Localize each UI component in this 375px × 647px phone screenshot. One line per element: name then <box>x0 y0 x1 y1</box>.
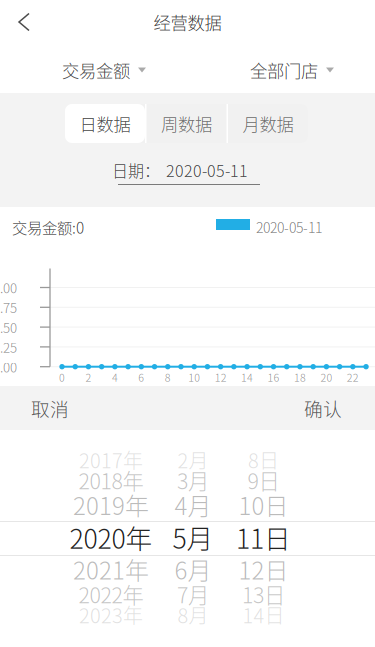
staticText: 确认 <box>304 394 342 421</box>
staticText: 月数据 <box>242 111 293 136</box>
staticText: 2月 <box>177 445 208 474</box>
staticText: 2017年 <box>79 445 143 474</box>
staticText: 全部门店 <box>250 57 318 83</box>
staticText: 13日 <box>242 579 285 609</box>
button[interactable]: 全部门店 <box>250 50 334 90</box>
staticText: 6月 <box>174 552 211 586</box>
staticText: 经营数据 <box>153 9 221 35</box>
staticText: 14日 <box>242 600 284 629</box>
staticText: 日数据 <box>79 111 130 136</box>
staticText: 7月 <box>177 579 209 609</box>
staticText: 14 <box>241 369 253 385</box>
staticText: 0 <box>59 369 65 385</box>
staticText: 交易金额:0 <box>12 216 84 238</box>
staticText: 0.00 <box>0 357 17 376</box>
staticText: 2022年 <box>78 579 143 609</box>
staticText: 2020-05-11 <box>256 217 322 237</box>
staticText: 10日 <box>238 487 288 522</box>
staticText: 4月 <box>174 487 211 522</box>
staticText: 2020年 <box>69 518 152 556</box>
staticText: 2023年 <box>79 600 143 629</box>
staticText: 18 <box>294 369 306 385</box>
staticText: 8月 <box>177 600 208 629</box>
button[interactable]: 交易金额 <box>62 50 146 90</box>
staticText: 9日 <box>247 465 279 495</box>
staticText: 交易金额 <box>62 57 130 83</box>
staticText: 0.25 <box>0 337 17 356</box>
staticText: 6 <box>138 369 144 385</box>
staticText: 取消 <box>31 394 69 421</box>
staticText: 0.75 <box>0 298 17 317</box>
staticText: 2021年 <box>73 552 149 586</box>
staticText: 2020-05-11 <box>166 158 248 182</box>
staticText: 2018年 <box>78 465 143 495</box>
staticText: 2019年 <box>73 487 149 522</box>
staticText: 8日 <box>248 445 279 474</box>
staticText: 5月 <box>172 518 213 556</box>
staticText: 16 <box>267 369 279 385</box>
staticText: 1.00 <box>0 278 17 297</box>
button[interactable]: 周数据 <box>146 104 226 143</box>
button[interactable]: Back <box>2 0 46 44</box>
staticText: 4 <box>112 369 118 385</box>
staticText: 2 <box>85 369 91 385</box>
button[interactable]: 月数据 <box>228 104 308 143</box>
staticText: 22 <box>347 369 359 385</box>
staticText: 日期： <box>112 158 160 182</box>
staticText: 8 <box>165 369 171 385</box>
button[interactable]: 取消 <box>0 386 105 430</box>
button[interactable]: 日数据 <box>65 104 145 143</box>
staticText: 20 <box>320 369 332 385</box>
staticText: 周数据 <box>161 111 212 136</box>
staticText: 3月 <box>177 465 209 495</box>
staticText: 11日 <box>236 518 291 556</box>
button[interactable]: 确认 <box>268 386 375 430</box>
staticText: 0.50 <box>0 317 17 337</box>
staticText: 10 <box>188 369 200 385</box>
staticText: 12日 <box>238 552 288 586</box>
staticText: 12 <box>215 369 227 385</box>
